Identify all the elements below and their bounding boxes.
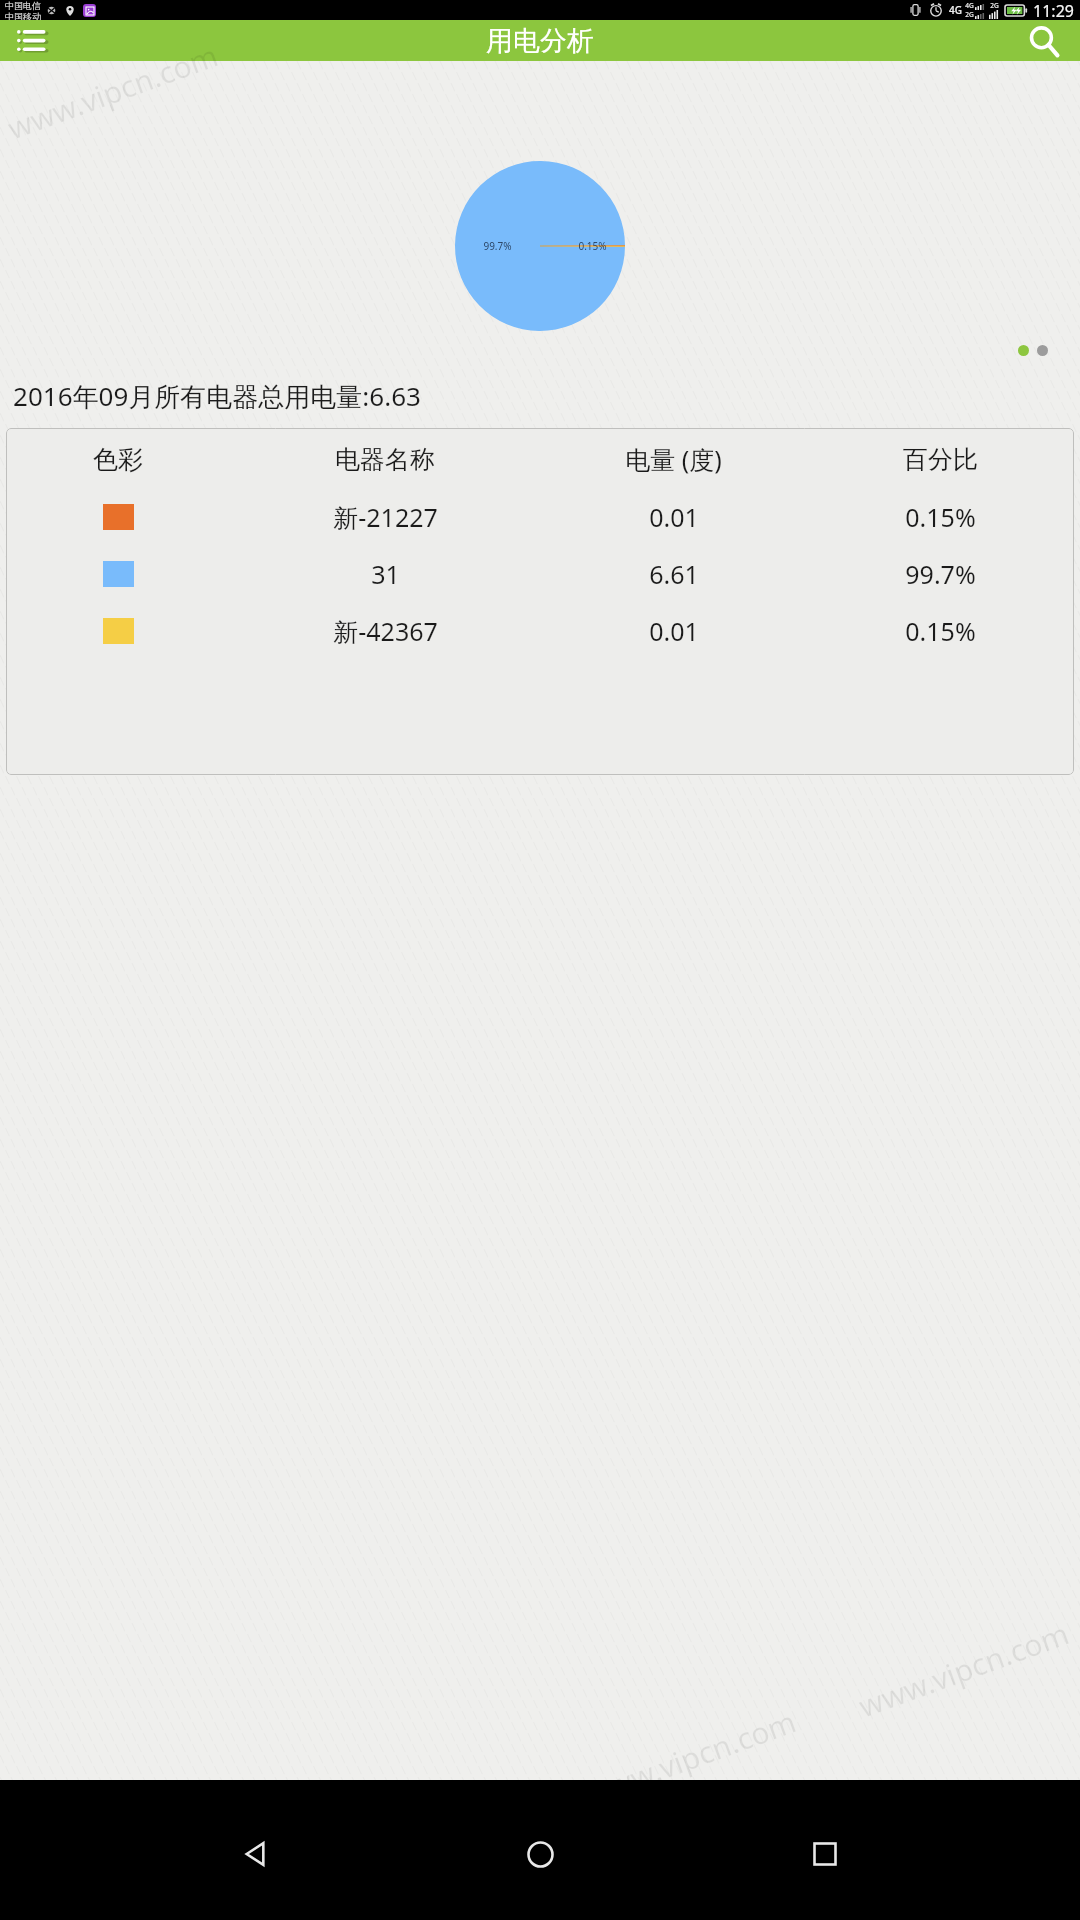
button[interactable]: Back [225, 1824, 285, 1884]
staticText: 4G [949, 3, 962, 17]
staticText: 电量 (度) [625, 442, 722, 476]
staticText: 0.01 [649, 614, 699, 648]
staticText: 0.15% [905, 614, 976, 648]
button[interactable]: 31 [6, 545, 1074, 602]
button[interactable]: 新-42367 [6, 602, 1074, 659]
staticText: 用电分析 [486, 24, 594, 58]
staticText: 0.01 [649, 500, 699, 534]
button[interactable]: Page 1 [1018, 345, 1029, 356]
staticText: 百分比 [903, 444, 978, 475]
staticText: 中国电信 [5, 0, 41, 11]
staticText: 2G [965, 10, 974, 19]
button[interactable]: Search [1020, 20, 1068, 61]
staticText: 4G [965, 1, 974, 10]
staticText: 2G [990, 1, 999, 10]
button[interactable]: Menu [10, 20, 54, 61]
staticText: 新-21227 [333, 500, 438, 534]
staticText: 新-42367 [333, 614, 438, 648]
button[interactable]: Home [510, 1824, 570, 1884]
staticText: 31 [371, 557, 400, 591]
staticText: www.vipcn.com [2, 34, 223, 148]
staticText: www.vipcn.com [580, 1700, 801, 1814]
button[interactable]: Page 2 [1037, 345, 1048, 356]
staticText: 0.15% [578, 239, 607, 253]
staticText: 2016年09月所有电器总用电量:6.63 [13, 378, 421, 414]
button[interactable]: 新-21227 [6, 488, 1074, 545]
button[interactable]: Recents [795, 1824, 855, 1884]
staticText: 6.61 [649, 557, 699, 591]
staticText: 色彩 [93, 444, 143, 475]
staticText: 99.7% [905, 557, 976, 591]
staticText: 0.15% [905, 500, 976, 534]
staticText: 99.7% [483, 239, 512, 253]
staticText: 电器名称 [335, 444, 435, 475]
staticText: 中国移动 [5, 11, 41, 20]
staticText: www.vipcn.com [853, 1612, 1074, 1726]
staticText: 11:29 [1033, 0, 1074, 20]
